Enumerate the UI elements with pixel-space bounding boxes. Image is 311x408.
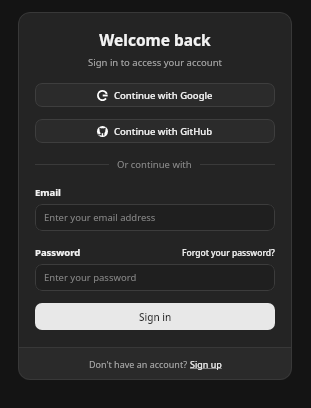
staticText: Sign in bbox=[139, 310, 172, 324]
button[interactable]: Continue with GitHub bbox=[35, 119, 275, 143]
button[interactable]: Sign up bbox=[190, 358, 222, 370]
button[interactable]: Enter your email address bbox=[35, 204, 275, 231]
button[interactable]: Enter your password bbox=[35, 264, 275, 291]
staticText: Email bbox=[35, 186, 61, 199]
staticText: Enter your password bbox=[44, 271, 137, 284]
staticText: Welcome back bbox=[35, 29, 275, 50]
staticText: Sign in to access your account bbox=[35, 56, 275, 69]
staticText: Don't have an account? bbox=[89, 358, 190, 370]
staticText: Enter your email address bbox=[44, 211, 156, 224]
staticText: Continue with GitHub bbox=[114, 125, 213, 138]
staticText: Forgot your password? bbox=[182, 247, 275, 259]
staticText: Password bbox=[35, 246, 81, 259]
staticText: Continue with Google bbox=[114, 89, 213, 102]
staticText: Or continue with bbox=[117, 158, 192, 171]
button[interactable]: Continue with Google bbox=[35, 83, 275, 107]
button[interactable]: Forgot your password? bbox=[182, 247, 275, 259]
button[interactable]: Sign in bbox=[35, 303, 275, 330]
staticText: Sign up bbox=[190, 358, 222, 370]
